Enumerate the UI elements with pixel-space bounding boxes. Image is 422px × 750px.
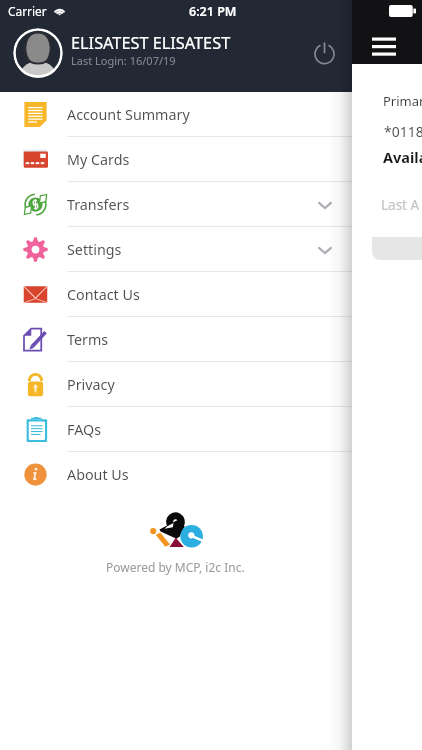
button[interactable]: Account Summary	[0, 92, 352, 137]
button[interactable]: Terms	[0, 317, 352, 362]
staticText: *0118	[384, 122, 422, 141]
staticText: Transfers	[67, 195, 130, 214]
button[interactable]: Transfers	[0, 182, 352, 227]
button[interactable]: FAQs	[0, 407, 352, 452]
button[interactable]: Logout	[309, 37, 340, 68]
staticText: 6:21 PM	[189, 3, 237, 20]
staticText: Privacy	[67, 375, 115, 394]
staticText: Settings	[67, 240, 122, 259]
staticText: About Us	[67, 465, 129, 484]
button[interactable]: Open navigation drawer	[364, 26, 404, 66]
button[interactable]: Privacy	[0, 362, 352, 407]
staticText: ELISATEST ELISATEST	[71, 32, 231, 54]
button[interactable]: About Us	[0, 452, 352, 497]
staticText: Last A	[381, 196, 420, 214]
staticText: Carrier	[8, 3, 47, 19]
staticText: Last Login: 16/07/19	[71, 53, 176, 68]
staticText: FAQs	[67, 420, 101, 439]
staticText: My Cards	[67, 150, 130, 169]
button[interactable]: Contact Us	[0, 272, 352, 317]
staticText: Powered by MCP, i2c Inc.	[106, 559, 245, 575]
staticText: Availa	[383, 147, 422, 167]
staticText: Terms	[67, 330, 109, 349]
button[interactable]: My Cards	[0, 137, 352, 182]
button[interactable]: Settings	[0, 227, 352, 272]
staticText: Primary	[383, 92, 422, 110]
staticText: Contact Us	[67, 285, 140, 304]
staticText: Account Summary	[67, 105, 190, 124]
